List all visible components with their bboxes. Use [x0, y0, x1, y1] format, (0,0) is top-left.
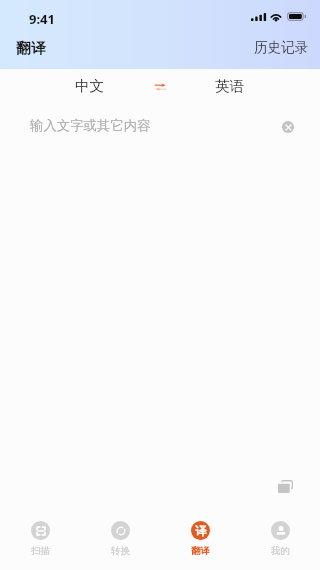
staticText: 英语	[215, 77, 245, 95]
staticText: 翻译	[16, 39, 47, 57]
button[interactable]: 中文	[40, 69, 140, 102]
staticText: 扫描	[31, 545, 50, 557]
button[interactable]: Copy	[273, 474, 297, 498]
button[interactable]: Swap languages	[140, 69, 180, 102]
staticText: 输入文字或其它内容	[30, 117, 151, 134]
staticText: 历史记录	[254, 39, 309, 56]
staticText: 中文	[75, 77, 105, 95]
button[interactable]: 我的	[240, 521, 320, 557]
button[interactable]: 历史记录	[254, 39, 309, 56]
staticText: 9:41	[29, 10, 55, 28]
staticText: 我的	[271, 545, 290, 557]
button[interactable]: Clear text	[278, 117, 298, 137]
button[interactable]: 转换	[80, 521, 160, 557]
staticText: 译	[195, 524, 207, 538]
staticText: 转换	[111, 545, 130, 557]
button[interactable]: 扫描	[0, 521, 80, 557]
button[interactable]: 译	[160, 521, 240, 557]
staticText: 翻译	[191, 545, 210, 557]
button[interactable]: 英语	[180, 69, 280, 102]
